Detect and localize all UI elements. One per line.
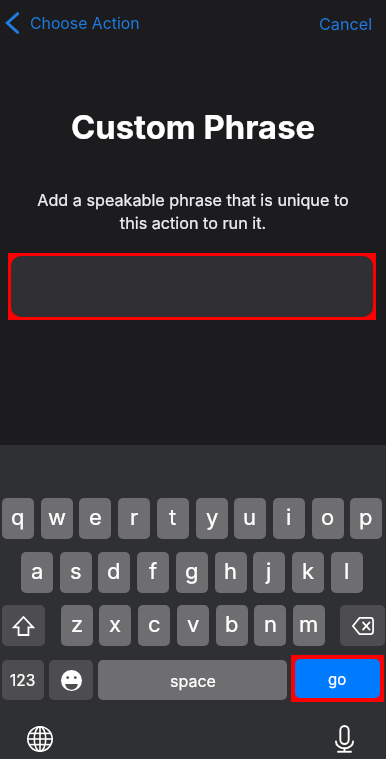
button[interactable] bbox=[11, 256, 373, 317]
button[interactable]: Shift bbox=[2, 605, 45, 646]
staticText: u bbox=[243, 504, 257, 531]
button[interactable]: go bbox=[295, 659, 380, 698]
button[interactable]: w bbox=[41, 498, 73, 539]
button[interactable]: k bbox=[292, 552, 324, 593]
staticText: space bbox=[170, 671, 216, 690]
button[interactable]: a bbox=[21, 552, 53, 593]
staticText: h bbox=[224, 558, 238, 585]
button[interactable]: j bbox=[253, 552, 285, 593]
button[interactable]: g bbox=[176, 552, 208, 593]
staticText: n bbox=[264, 611, 277, 638]
button[interactable]: l bbox=[331, 552, 363, 593]
staticText: y bbox=[206, 504, 219, 531]
button[interactable]: Backspace bbox=[340, 605, 385, 646]
staticText: f bbox=[149, 558, 158, 585]
staticText: g bbox=[185, 558, 199, 585]
button[interactable]: Change keyboard bbox=[21, 720, 59, 758]
staticText: q bbox=[11, 504, 25, 531]
staticText: k bbox=[302, 558, 315, 585]
staticText: e bbox=[89, 504, 102, 531]
staticText: o bbox=[321, 504, 335, 531]
button[interactable]: h bbox=[215, 552, 247, 593]
staticText: go bbox=[328, 670, 347, 688]
button[interactable]: n bbox=[254, 605, 286, 646]
button[interactable]: 123 bbox=[2, 660, 44, 700]
button[interactable]: v bbox=[177, 605, 209, 646]
staticText: Choose Action bbox=[30, 14, 140, 33]
staticText: l bbox=[344, 558, 350, 585]
staticText: m bbox=[299, 611, 319, 638]
staticText: t bbox=[169, 504, 177, 531]
button[interactable]: o bbox=[312, 498, 344, 539]
button[interactable]: space bbox=[98, 660, 287, 700]
button[interactable]: s bbox=[60, 552, 92, 593]
staticText: s bbox=[70, 558, 82, 585]
button[interactable]: Choose Action bbox=[2, 4, 142, 41]
button[interactable]: b bbox=[216, 605, 248, 646]
staticText: i bbox=[286, 504, 292, 531]
button[interactable]: f bbox=[137, 552, 169, 593]
staticText: Add a speakable phrase that is unique to… bbox=[30, 190, 356, 233]
staticText: x bbox=[109, 611, 122, 638]
button[interactable]: p bbox=[350, 498, 382, 539]
staticText: Custom Phrase bbox=[0, 107, 386, 147]
button[interactable]: d bbox=[98, 552, 130, 593]
button[interactable]: Cancel bbox=[308, 4, 386, 41]
staticText: 123 bbox=[10, 671, 36, 690]
staticText: d bbox=[107, 558, 121, 585]
button[interactable]: i bbox=[273, 498, 305, 539]
button[interactable]: z bbox=[61, 605, 93, 646]
button[interactable]: y bbox=[196, 498, 228, 539]
button[interactable]: t bbox=[157, 498, 189, 539]
staticText: v bbox=[187, 611, 200, 638]
staticText: Cancel bbox=[319, 14, 373, 34]
staticText: z bbox=[71, 611, 84, 638]
staticText: r bbox=[130, 504, 139, 531]
button[interactable]: m bbox=[293, 605, 325, 646]
staticText: a bbox=[31, 558, 44, 585]
button[interactable]: u bbox=[234, 498, 266, 539]
staticText: c bbox=[148, 611, 161, 638]
button[interactable]: e bbox=[79, 498, 111, 539]
button[interactable]: c bbox=[138, 605, 170, 646]
staticText: j bbox=[266, 558, 272, 585]
staticText: p bbox=[359, 504, 373, 531]
button[interactable]: r bbox=[118, 498, 150, 539]
staticText: w bbox=[48, 504, 67, 531]
button[interactable]: q bbox=[2, 498, 34, 539]
staticText: b bbox=[225, 611, 239, 638]
button[interactable]: x bbox=[99, 605, 131, 646]
button[interactable]: Emoji keyboard bbox=[49, 660, 93, 700]
button[interactable]: Dictate bbox=[325, 720, 363, 758]
